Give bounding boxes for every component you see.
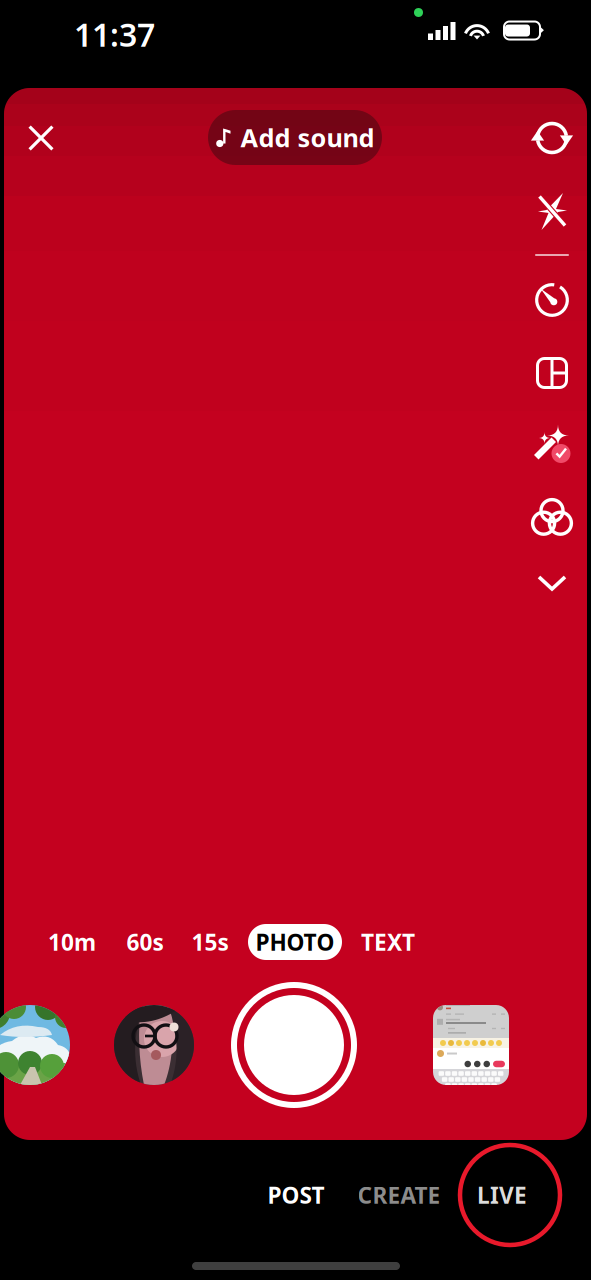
staticText: Add sound	[240, 121, 374, 154]
button[interactable]: Effects	[531, 423, 573, 465]
button[interactable]: More options	[534, 564, 570, 600]
staticText: 10m	[48, 927, 96, 957]
staticText: 15s	[191, 927, 228, 957]
button[interactable]: 15s	[182, 924, 238, 960]
button[interactable]: Recent screenshot	[433, 1005, 509, 1085]
button[interactable]: Layout	[535, 356, 569, 390]
button[interactable]: Filters	[533, 498, 571, 536]
staticText: PHOTO	[255, 927, 334, 957]
button[interactable]: Take photo	[234, 985, 354, 1105]
button[interactable]: Add sound	[208, 110, 382, 165]
button[interactable]: LIVE	[454, 1172, 550, 1218]
staticText: TEXT	[361, 927, 415, 957]
staticText: POST	[267, 1180, 324, 1210]
button[interactable]: TEXT	[358, 924, 418, 960]
button[interactable]: 10m	[42, 924, 102, 960]
staticText: CREATE	[357, 1180, 440, 1210]
staticText: LIVE	[477, 1180, 527, 1210]
button[interactable]: Close	[24, 121, 58, 155]
button[interactable]: Flash off	[531, 190, 573, 232]
button[interactable]: 60s	[115, 924, 175, 960]
staticText: 11:37	[74, 13, 155, 55]
button[interactable]: Gallery	[0, 1005, 70, 1085]
button[interactable]: Timer	[531, 279, 573, 321]
staticText: 60s	[126, 927, 163, 957]
button[interactable]: PHOTO	[248, 924, 342, 960]
button[interactable]: Switch camera	[531, 117, 573, 159]
button[interactable]: CREATE	[348, 1172, 450, 1218]
button[interactable]: Effect preview	[114, 1005, 194, 1085]
button[interactable]: POST	[258, 1172, 334, 1218]
